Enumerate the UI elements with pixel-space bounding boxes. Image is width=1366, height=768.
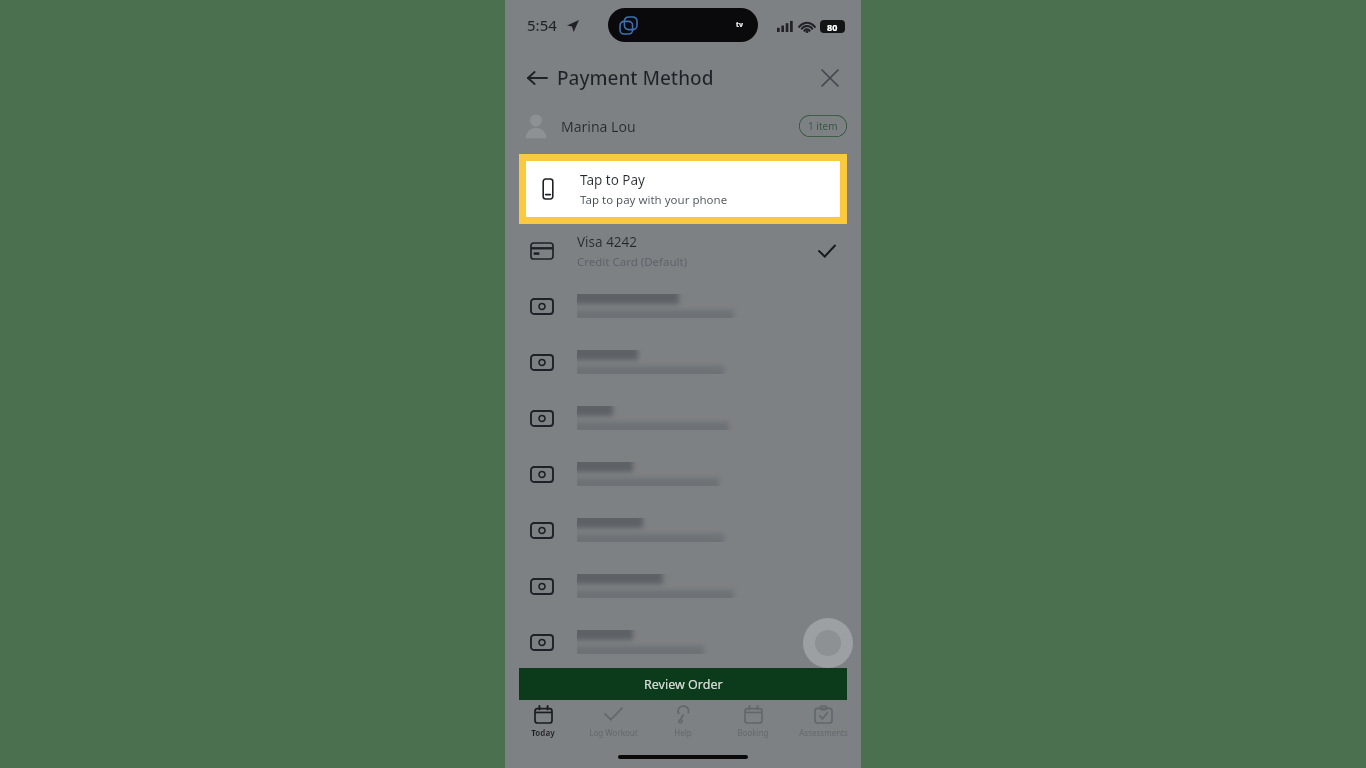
staticText: Help bbox=[674, 727, 692, 738]
button[interactable]: Cart bbox=[803, 618, 853, 668]
button[interactable]: Log Workout bbox=[581, 706, 645, 738]
staticText: Booking bbox=[737, 727, 769, 738]
staticText: 5:54 bbox=[527, 15, 557, 35]
button[interactable]: Visa 4242 bbox=[505, 224, 861, 278]
staticText: Today bbox=[531, 727, 555, 738]
staticText: Tap to Pay bbox=[580, 171, 645, 189]
button[interactable] bbox=[505, 558, 861, 614]
staticText: Marina Lou bbox=[561, 117, 636, 136]
staticText: Credit Card (Default) bbox=[577, 254, 688, 270]
button[interactable] bbox=[505, 502, 861, 558]
staticText: Payment Method bbox=[557, 65, 714, 91]
button[interactable]: Back bbox=[519, 60, 555, 96]
staticText: Review Order bbox=[644, 676, 723, 693]
button[interactable] bbox=[505, 278, 861, 334]
button[interactable]: Assessments bbox=[791, 706, 855, 738]
button[interactable] bbox=[505, 390, 861, 446]
staticText: Visa 4242 bbox=[577, 233, 638, 251]
staticText: Tap to pay with your phone bbox=[580, 192, 728, 208]
staticText: 80 bbox=[827, 21, 838, 33]
button[interactable]: Close bbox=[813, 61, 847, 95]
button[interactable]: Marina Lou bbox=[505, 104, 861, 148]
staticText: Log Workout bbox=[589, 727, 638, 738]
button[interactable]: Help bbox=[651, 706, 715, 738]
button[interactable] bbox=[505, 614, 861, 670]
button[interactable]: Review Order bbox=[519, 668, 847, 700]
staticText: Assessments bbox=[799, 727, 848, 738]
button[interactable]: 1 item bbox=[799, 115, 847, 137]
staticText: 1 item bbox=[808, 119, 838, 133]
button[interactable]: Tap to Pay bbox=[526, 161, 840, 217]
button[interactable] bbox=[505, 334, 861, 390]
button[interactable]: Today bbox=[511, 706, 575, 738]
button[interactable]: Booking bbox=[721, 706, 785, 738]
staticText: tv bbox=[736, 20, 744, 30]
button[interactable] bbox=[505, 446, 861, 502]
